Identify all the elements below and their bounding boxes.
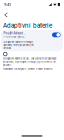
staticText: Použít Adaptivní baterii bbox=[3, 32, 26, 35]
staticText: Nastavení lze kdykoli změnit v sekci Bat… bbox=[3, 67, 53, 70]
staticText: Adaptivní baterie se učí, jak jednotlivé… bbox=[3, 57, 56, 66]
button[interactable]: Použít Adaptivní baterii bbox=[1, 30, 63, 51]
staticText: 9:41 bbox=[4, 2, 11, 7]
staticText: Adaptivní baterie omezuje aplikace, kter… bbox=[3, 40, 33, 50]
staticText: Adaptivní baterie bbox=[3, 22, 52, 29]
staticText: Prodlouží výdrž baterie bbox=[3, 35, 26, 38]
button[interactable]: Zpět bbox=[0, 9, 11, 20]
